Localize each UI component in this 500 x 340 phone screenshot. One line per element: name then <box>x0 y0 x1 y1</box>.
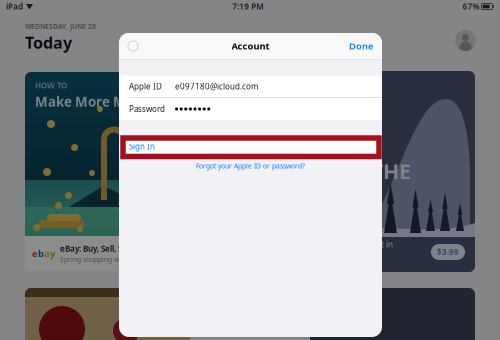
staticText: WEDNESDAY, JUNE 20 <box>25 22 96 31</box>
staticText: Password <box>129 104 165 114</box>
staticText: b <box>38 247 44 260</box>
staticText: e <box>32 247 38 260</box>
button[interactable]: THE <box>310 71 475 272</box>
staticText: THE <box>371 157 411 185</box>
staticText: Make More Money <box>35 93 159 110</box>
staticText: $3.99 <box>437 247 459 257</box>
staticText: a <box>44 247 50 260</box>
staticText: Lost in <box>368 239 393 250</box>
staticText: 7:19 PM <box>232 1 263 12</box>
staticText: Account <box>231 40 269 52</box>
button[interactable]: Forgot your Apple ID or password? <box>119 159 382 173</box>
staticText: Spring shopping deals <box>60 255 131 264</box>
staticText: eBay: Buy, Sell, Save <box>60 243 136 254</box>
staticText: 67% <box>462 1 479 12</box>
button[interactable]: HOW TO <box>25 72 190 271</box>
button[interactable]: Featured story <box>25 288 190 340</box>
staticText: Sign In <box>129 141 155 152</box>
staticText: Apple ID <box>129 81 162 92</box>
staticText: HOW TO <box>35 80 67 91</box>
staticText: Forgot your Apple ID or password? <box>196 162 305 170</box>
staticText: iPad <box>6 1 23 12</box>
staticText: y <box>50 247 55 260</box>
button[interactable]: Sign In <box>119 140 382 153</box>
button[interactable]: Account <box>455 30 476 51</box>
staticText: Done <box>349 40 373 52</box>
button[interactable]: $3.99 <box>431 244 465 260</box>
staticText: e097180@icloud.com <box>175 81 258 92</box>
button[interactable]: Featured app <box>310 288 475 340</box>
staticText: Today <box>25 32 72 53</box>
button[interactable]: Done <box>349 40 373 52</box>
